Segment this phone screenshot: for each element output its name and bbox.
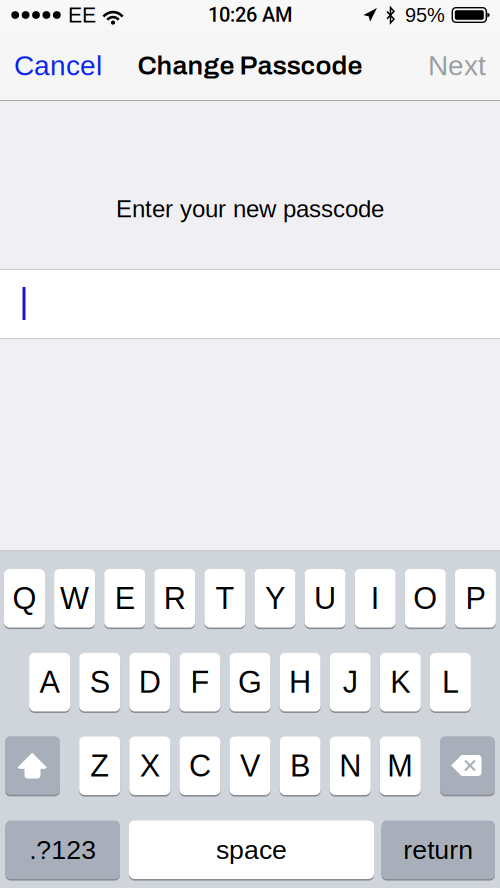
staticText: .?123 bbox=[29, 835, 96, 865]
staticText: L bbox=[442, 665, 459, 699]
staticText: T bbox=[215, 581, 234, 615]
staticText: B bbox=[290, 749, 310, 783]
staticText: Z bbox=[90, 749, 109, 783]
button[interactable]: F bbox=[179, 652, 220, 712]
button[interactable]: E bbox=[104, 568, 145, 628]
staticText: S bbox=[90, 665, 110, 699]
button[interactable]: T bbox=[204, 568, 245, 628]
button[interactable]: C bbox=[179, 735, 220, 796]
staticText: space bbox=[216, 835, 287, 865]
staticText: Enter your new passcode bbox=[116, 196, 384, 222]
button[interactable]: Next bbox=[416, 30, 500, 100]
staticText: I bbox=[371, 581, 380, 615]
button[interactable]: K bbox=[380, 652, 421, 712]
button[interactable]: B bbox=[280, 735, 321, 796]
staticText: O bbox=[413, 581, 437, 615]
button[interactable]: D bbox=[129, 652, 170, 712]
staticText: 10:26 AM bbox=[208, 3, 292, 27]
staticText: Q bbox=[12, 581, 36, 615]
button[interactable]: .?123 bbox=[5, 819, 120, 880]
button[interactable]: space bbox=[129, 819, 374, 880]
staticText: EE bbox=[68, 3, 96, 27]
button[interactable]: I bbox=[355, 568, 396, 628]
staticText: F bbox=[190, 665, 209, 699]
button[interactable]: Shift bbox=[5, 735, 60, 795]
button[interactable]: M bbox=[380, 735, 421, 796]
staticText: C bbox=[189, 749, 211, 783]
button[interactable]: U bbox=[305, 568, 346, 628]
button[interactable]: N bbox=[330, 735, 371, 796]
button[interactable]: V bbox=[229, 735, 270, 796]
button[interactable]: Q bbox=[4, 568, 45, 628]
staticText: A bbox=[40, 665, 60, 699]
button[interactable]: Cancel bbox=[0, 30, 114, 100]
button[interactable]: X bbox=[129, 735, 170, 796]
staticText: M bbox=[387, 749, 413, 783]
button[interactable]: P bbox=[455, 568, 496, 628]
staticText: J bbox=[343, 665, 358, 699]
button[interactable]: L bbox=[430, 652, 471, 712]
staticText: return bbox=[403, 835, 473, 865]
button[interactable]: G bbox=[229, 652, 270, 712]
button[interactable]: H bbox=[280, 652, 321, 712]
staticText: Cancel bbox=[14, 50, 102, 81]
staticText: K bbox=[390, 665, 410, 699]
staticText: Next bbox=[428, 50, 486, 81]
staticText: N bbox=[339, 749, 361, 783]
button[interactable]: return bbox=[381, 819, 495, 880]
button[interactable]: J bbox=[330, 652, 371, 712]
button[interactable]: Delete bbox=[440, 735, 495, 795]
staticText: 95% bbox=[405, 4, 445, 26]
staticText: X bbox=[140, 749, 160, 783]
button[interactable]: O bbox=[405, 568, 446, 628]
staticText: D bbox=[139, 665, 161, 699]
staticText: W bbox=[60, 581, 89, 615]
staticText: R bbox=[164, 581, 186, 615]
button[interactable]: R bbox=[154, 568, 195, 628]
button[interactable]: W bbox=[54, 568, 95, 628]
button[interactable]: S bbox=[79, 652, 120, 712]
staticText: V bbox=[240, 749, 260, 783]
staticText: E bbox=[115, 581, 135, 615]
staticText: P bbox=[465, 581, 485, 615]
staticText: Y bbox=[265, 581, 285, 615]
button[interactable]: A bbox=[29, 652, 70, 712]
staticText: G bbox=[238, 665, 262, 699]
staticText: U bbox=[314, 581, 336, 615]
button[interactable]: Y bbox=[254, 568, 295, 628]
staticText: H bbox=[289, 665, 311, 699]
button[interactable]: Z bbox=[79, 735, 120, 796]
staticText: Change Passcode bbox=[137, 51, 362, 80]
